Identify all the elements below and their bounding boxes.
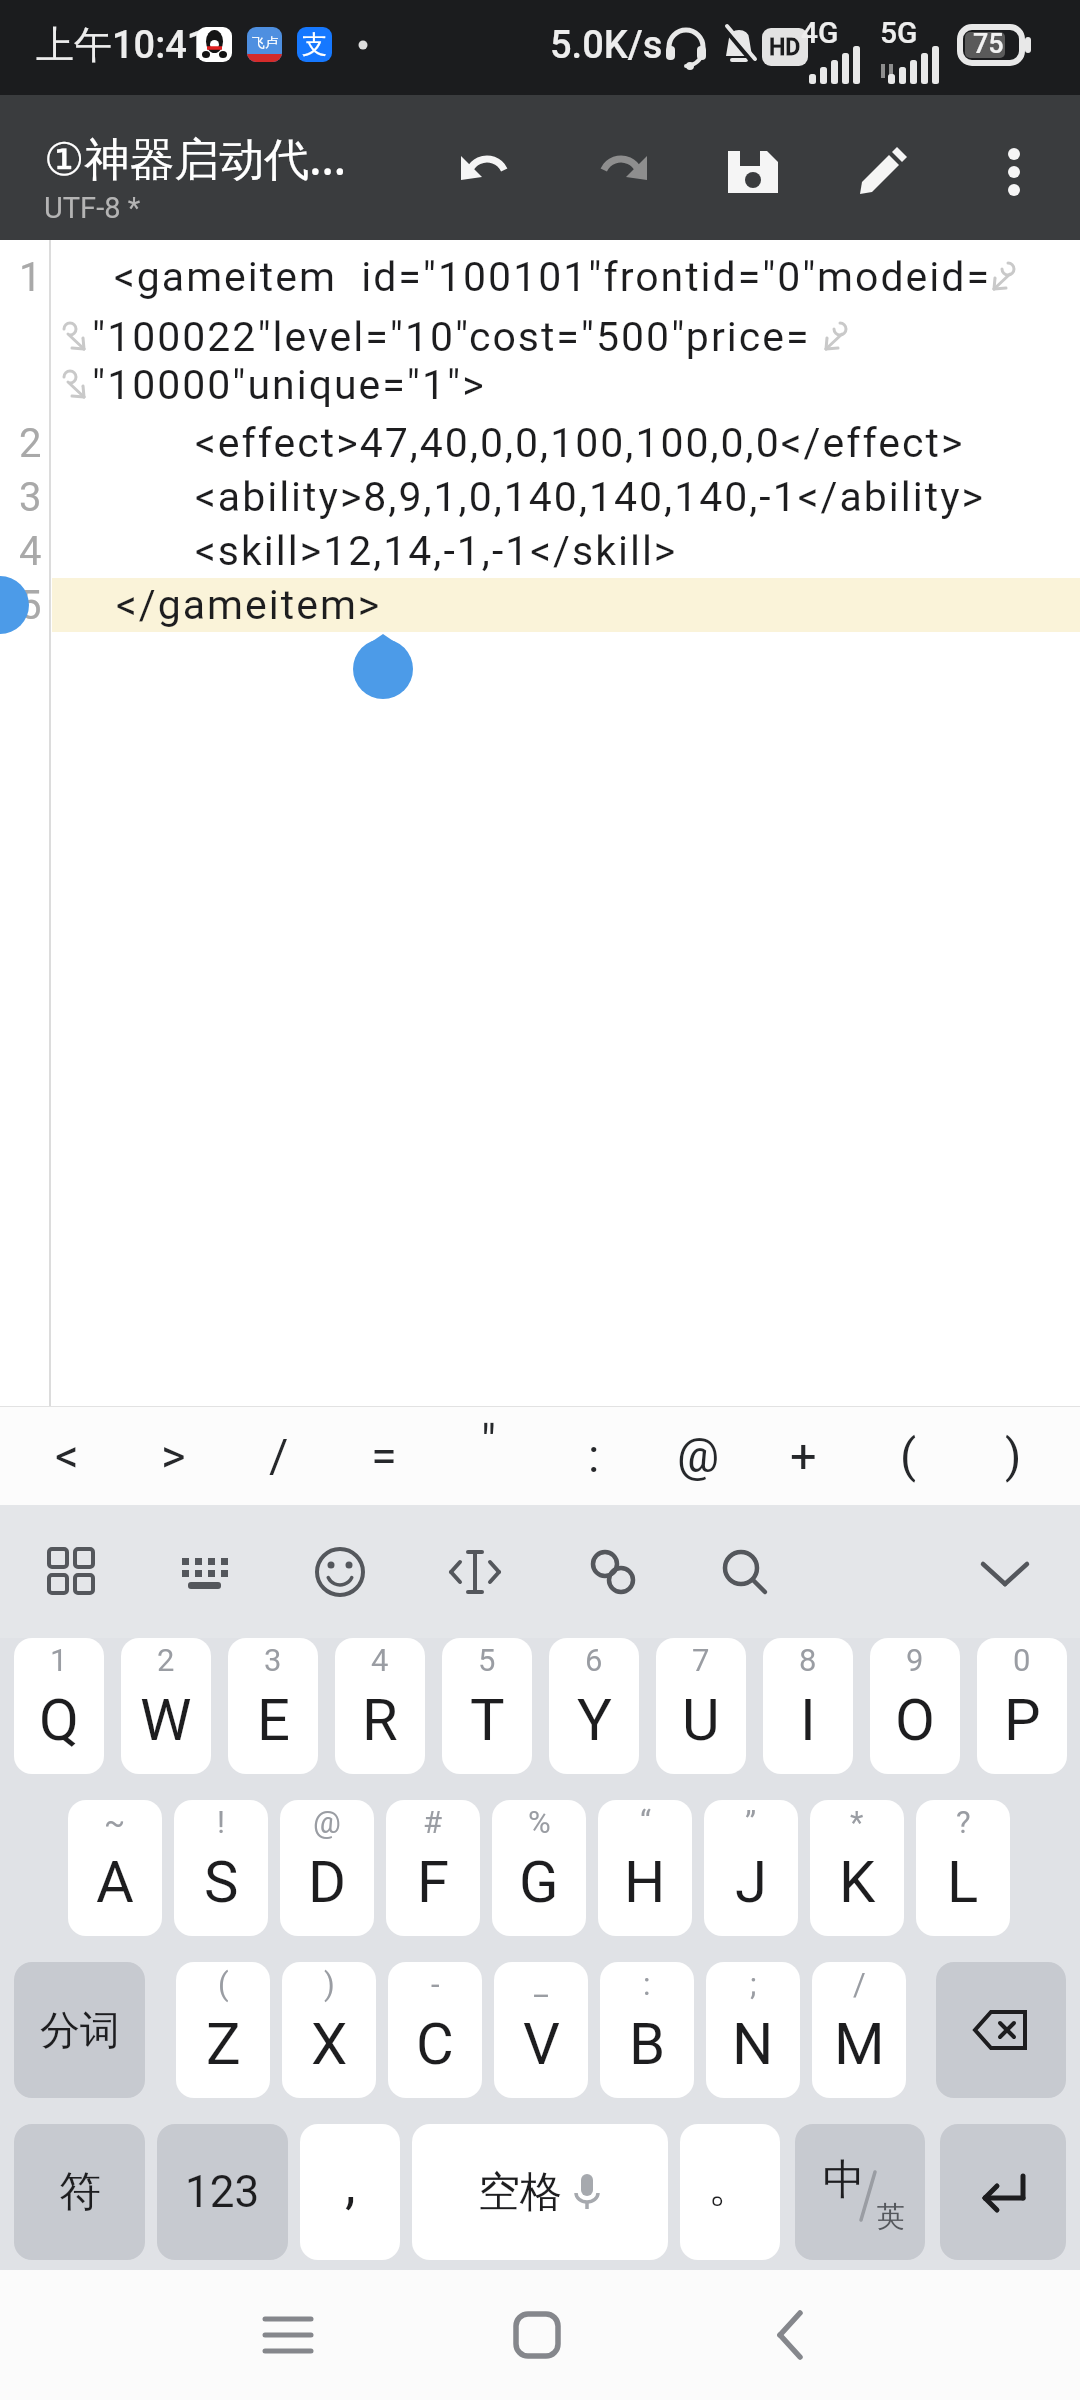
button[interactable]: _ [494,1962,588,2098]
staticText: 空格 [478,2166,562,2219]
staticText: HD [769,34,801,61]
staticText: ( [218,1966,229,2002]
button[interactable]: 9 [870,1638,960,1774]
button[interactable]: 符 [14,2124,145,2260]
button[interactable]: ( [856,1406,961,1505]
staticText: </gameitem> [116,581,382,629]
button[interactable] [979,137,1049,207]
button[interactable]: 3 [228,1638,318,1774]
button[interactable]: / [812,1962,906,2098]
button[interactable]: ) [961,1406,1066,1505]
staticText: 3 [19,474,42,521]
button[interactable] [760,2305,820,2365]
button[interactable] [718,137,788,207]
staticText: 。 [708,2159,752,2214]
staticText: "100022"level="10"cost="500"price= [92,313,811,361]
button[interactable]: “ [598,1800,692,1936]
button[interactable] [44,1544,100,1600]
button[interactable]: < [14,1406,120,1505]
staticText: A [96,1848,134,1916]
button[interactable] [452,137,522,207]
staticText: P [1004,1686,1041,1754]
staticText: R [362,1686,398,1754]
staticText: 5.0K/s [550,23,663,68]
button[interactable]: / [226,1406,331,1505]
button[interactable]: * [810,1800,904,1936]
staticText: ①神器启动代... [44,127,347,188]
button[interactable] [585,1544,641,1600]
button[interactable] [447,1544,503,1600]
button[interactable]: 中 [795,2124,925,2260]
staticText: D [308,1848,347,1916]
button[interactable]: 0 [977,1638,1067,1774]
button[interactable] [717,1544,773,1600]
button[interactable] [177,1544,233,1600]
button[interactable]: 123 [157,2124,288,2260]
staticText: ( [900,1428,917,1483]
button[interactable]: @ [280,1800,374,1936]
button[interactable]: ~ [68,1800,162,1936]
button[interactable]: 4 [335,1638,425,1774]
button[interactable] [312,1544,368,1600]
button[interactable] [977,1544,1033,1600]
button[interactable]: 空格 [412,2124,668,2260]
button[interactable] [848,137,918,207]
button[interactable]: > [120,1406,226,1505]
button[interactable] [507,2305,567,2365]
button[interactable]: ! [174,1800,268,1936]
button[interactable]: 1 [14,1638,104,1774]
staticText: 分词 [40,2005,120,2055]
staticText: 中 [823,2154,865,2207]
staticText: X [311,2010,348,2078]
button[interactable] [586,137,656,207]
button[interactable]: " [436,1406,541,1505]
button[interactable] [936,1962,1066,2098]
staticText: 4 [19,528,42,575]
button[interactable]: 8 [763,1638,853,1774]
button[interactable]: 5 [442,1638,532,1774]
button[interactable]: 分词 [14,1962,145,2098]
staticText: Z [206,2010,241,2078]
button[interactable]: , [300,2124,400,2260]
button[interactable]: - [388,1962,482,2098]
staticText: 75 [973,28,1004,60]
button[interactable]: 6 [549,1638,639,1774]
staticText: : [643,1966,651,2002]
button[interactable]: @ [646,1406,751,1505]
button[interactable]: 2 [121,1638,211,1774]
staticText: <ability>8,9,1,0,140,140,140,-1</ability… [195,473,985,521]
button[interactable]: 7 [656,1638,746,1774]
staticText: 123 [185,2166,260,2218]
button[interactable] [258,2305,318,2365]
button[interactable]: ? [916,1800,1010,1936]
staticText: _ [534,1966,548,2002]
button[interactable] [940,2124,1066,2260]
staticText: 5 [478,1642,496,1678]
staticText: “ [640,1804,651,1840]
button[interactable]: ( [176,1962,270,2098]
staticText: 8 [799,1642,817,1678]
staticText: E [257,1686,290,1754]
staticText: G [519,1848,559,1916]
button[interactable]: ” [704,1800,798,1936]
button[interactable]: + [751,1406,856,1505]
button[interactable]: = [331,1406,436,1505]
button[interactable]: : [541,1406,646,1505]
button[interactable]: : [600,1962,694,2098]
button[interactable]: % [492,1800,586,1936]
staticText: T [470,1686,505,1754]
staticText: 英 [877,2199,905,2234]
staticText: 1 [50,1642,68,1678]
button[interactable]: 。 [680,2124,780,2260]
staticText: 7 [692,1642,710,1678]
staticText: 4 [371,1642,389,1678]
button[interactable]: # [386,1800,480,1936]
button[interactable]: ) [282,1962,376,2098]
staticText: B [629,2010,666,2078]
staticText: 5G [880,15,918,50]
staticText: S [204,1848,239,1916]
staticText: 2 [157,1642,175,1678]
staticText: 0 [1013,1642,1031,1678]
staticText: K [839,1848,876,1916]
button[interactable]: ; [706,1962,800,2098]
